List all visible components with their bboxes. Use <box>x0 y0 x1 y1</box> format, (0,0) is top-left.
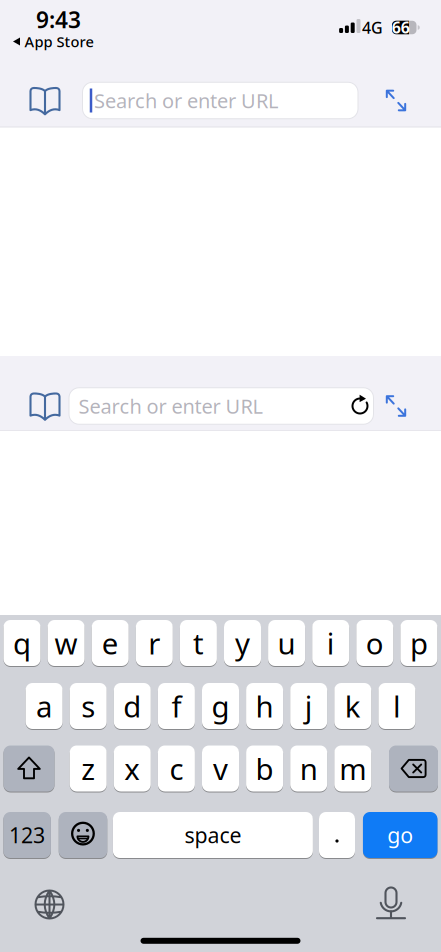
staticText: y <box>235 623 250 662</box>
staticText: l <box>393 686 401 725</box>
button[interactable]: s <box>70 682 107 729</box>
button[interactable]: f <box>158 682 195 729</box>
staticText: 66 <box>392 17 410 38</box>
button[interactable]: z <box>70 745 107 792</box>
staticText: g <box>211 686 229 725</box>
button[interactable]: Emoji <box>59 811 107 858</box>
staticText: App Store <box>24 32 93 51</box>
staticText: p <box>410 623 428 662</box>
button[interactable]: n <box>290 745 327 792</box>
button[interactable]: b <box>246 745 283 792</box>
staticText: o <box>366 623 384 662</box>
staticText: 4G <box>362 17 383 38</box>
button[interactable]: go <box>363 811 437 858</box>
staticText: r <box>148 623 160 662</box>
button[interactable]: j <box>290 682 327 729</box>
staticText: t <box>193 623 204 662</box>
button[interactable]: Address <box>82 82 358 119</box>
staticText: Search or enter URL <box>78 393 262 419</box>
staticText: i <box>327 623 335 662</box>
button[interactable]: Delete <box>389 745 438 792</box>
button[interactable]: t <box>180 619 217 666</box>
button[interactable]: u <box>268 619 305 666</box>
staticText: s <box>81 686 95 725</box>
staticText: e <box>102 623 119 662</box>
button[interactable]: Shift <box>3 745 54 792</box>
staticText: x <box>124 749 140 788</box>
staticText: f <box>171 686 181 725</box>
staticText: u <box>278 623 296 662</box>
staticText: c <box>169 749 183 788</box>
button[interactable]: v <box>202 745 239 792</box>
button[interactable]: . <box>319 811 355 858</box>
button[interactable]: r <box>136 619 173 666</box>
staticText: Search or enter URL <box>94 87 278 114</box>
staticText: 9:43 <box>36 4 81 34</box>
button[interactable]: e <box>92 619 129 666</box>
button[interactable]: k <box>334 682 371 729</box>
staticText: d <box>123 686 141 725</box>
button[interactable]: p <box>400 619 437 666</box>
button[interactable]: l <box>378 682 415 729</box>
staticText: v <box>213 749 228 788</box>
button[interactable]: c <box>158 745 195 792</box>
button[interactable]: Expand <box>383 393 409 419</box>
button[interactable]: h <box>246 682 283 729</box>
button[interactable]: g <box>202 682 239 729</box>
button[interactable]: Bookmarks <box>30 87 60 114</box>
button[interactable]: Dictate <box>374 885 408 923</box>
staticText: z <box>81 749 95 788</box>
button[interactable]: o <box>356 619 393 666</box>
button[interactable]: Back to App Store <box>12 32 93 51</box>
staticText: n <box>300 749 318 788</box>
staticText: go <box>387 821 413 849</box>
staticText: b <box>256 749 274 788</box>
button[interactable]: a <box>26 682 63 729</box>
button[interactable]: Next keyboard <box>33 888 65 920</box>
staticText: h <box>256 686 274 725</box>
button[interactable]: Bookmarks <box>30 392 60 419</box>
button[interactable]: w <box>48 619 85 666</box>
staticText: a <box>36 686 52 725</box>
button[interactable]: d <box>114 682 151 729</box>
button[interactable]: i <box>312 619 349 666</box>
staticText: m <box>339 749 366 788</box>
button[interactable]: y <box>224 619 261 666</box>
staticText: space <box>184 821 241 849</box>
button[interactable]: x <box>114 745 151 792</box>
staticText: q <box>13 623 31 662</box>
button[interactable]: Address <box>69 388 373 424</box>
button[interactable]: 123 <box>3 811 51 858</box>
staticText: j <box>305 686 313 725</box>
staticText: w <box>55 623 78 662</box>
button[interactable]: m <box>334 745 371 792</box>
staticText: 123 <box>9 821 45 849</box>
button[interactable]: q <box>3 619 40 666</box>
button[interactable]: Expand <box>383 87 409 113</box>
button[interactable]: space <box>113 811 313 858</box>
staticText: k <box>345 686 361 725</box>
